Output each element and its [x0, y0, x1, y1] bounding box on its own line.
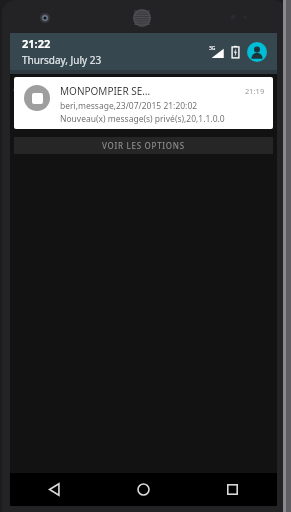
button[interactable]: Home	[99, 473, 188, 506]
button[interactable]: DEMANDER AU CODIS	[14, 94, 273, 117]
button[interactable]: VOIR LES OPTIONS	[14, 137, 273, 154]
button[interactable]: Sort	[247, 92, 271, 112]
button[interactable]: Back	[10, 473, 99, 506]
staticText: Thursday, July 23	[22, 53, 102, 67]
staticText: VOIR LES OPTIONS	[102, 140, 185, 151]
staticText: DEMANDER AU CODIS	[90, 100, 197, 112]
staticText: MONPOMPIER SERVICE	[60, 84, 152, 98]
button[interactable]: Recent apps	[188, 473, 277, 506]
button[interactable]: Account	[247, 42, 267, 62]
staticText: 21:22	[22, 36, 51, 51]
staticText: beri,message,23/07/2015 21:20:02	[60, 100, 198, 112]
button[interactable]: MONPOMPIER SERVICE	[14, 77, 273, 129]
staticText: 3G	[209, 45, 216, 52]
staticText: 21:19	[245, 86, 265, 96]
staticText: A	[13, 82, 19, 93]
staticText: Nouveau(x) message(s) privé(s),20,1.1.0.…	[60, 113, 225, 125]
